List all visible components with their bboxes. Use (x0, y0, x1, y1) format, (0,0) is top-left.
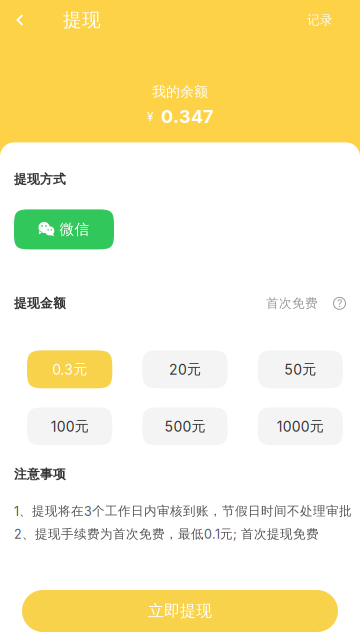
staticText: 提现 (63, 8, 101, 32)
staticText: 首次免费 (266, 295, 318, 311)
staticText: 50元 (284, 360, 316, 378)
staticText: 500元 (164, 417, 205, 435)
staticText: 100元 (51, 417, 89, 435)
staticText: 1、提现将在3个工作日内审核到账，节假日时间不处理审批 (14, 503, 352, 519)
staticText: 提现金额 (14, 295, 66, 311)
button[interactable]: 记录 (293, 0, 347, 40)
button[interactable]: 500元 (142, 407, 228, 445)
button[interactable]: Back (1, 0, 39, 40)
staticText: 0.347 (161, 106, 213, 127)
staticText: 我的余额 (152, 83, 208, 101)
button[interactable]: 20元 (142, 350, 228, 388)
staticText: ? (337, 297, 342, 310)
staticText: 提现方式 (14, 171, 66, 187)
button[interactable]: 立即提现 (22, 590, 338, 632)
staticText: ¥ (147, 109, 154, 124)
button[interactable]: 50元 (258, 350, 343, 388)
staticText: 立即提现 (148, 601, 212, 621)
button[interactable]: 微信 (14, 209, 114, 249)
staticText: 记录 (307, 12, 333, 28)
staticText: 20元 (169, 360, 201, 378)
staticText: 2、提现手续费为首次免费，最低0.1元; 首次提现免费 (14, 526, 319, 542)
button[interactable]: 1000元 (258, 407, 343, 445)
button[interactable]: 0.3元 (27, 350, 112, 388)
staticText: 1000元 (277, 417, 324, 435)
staticText: 微信 (59, 220, 89, 239)
staticText: 注意事项 (14, 466, 66, 482)
button[interactable]: 100元 (27, 407, 112, 445)
staticText: 0.3元 (52, 360, 87, 378)
